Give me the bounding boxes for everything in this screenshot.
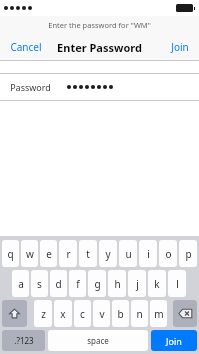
button[interactable]: j: [128, 270, 146, 297]
staticText: space: [87, 335, 109, 346]
button[interactable]: Join: [151, 330, 197, 351]
staticText: e: [46, 247, 52, 261]
staticText: h: [114, 277, 121, 291]
staticText: .?123: [14, 335, 34, 346]
button[interactable]: f: [69, 270, 86, 297]
button[interactable]: o: [159, 240, 177, 267]
button[interactable]: Shift: [2, 300, 27, 327]
button[interactable]: t: [79, 240, 97, 267]
staticText: Enter the password for "WM": [48, 20, 151, 30]
staticText: z: [41, 307, 46, 321]
staticText: l: [176, 277, 179, 291]
button[interactable]: k: [148, 270, 166, 297]
button[interactable]: z: [34, 300, 52, 327]
button[interactable]: g: [88, 270, 106, 297]
staticText: c: [80, 307, 85, 321]
staticText: u: [125, 247, 132, 261]
staticText: Cancel: [10, 40, 42, 54]
button[interactable]: .?123: [2, 330, 45, 351]
staticText: g: [94, 277, 101, 291]
button[interactable]: y: [99, 240, 117, 267]
staticText: j: [136, 277, 139, 291]
staticText: t: [86, 247, 90, 261]
button[interactable]: e: [40, 240, 57, 267]
staticText: k: [154, 277, 160, 291]
staticText: Password: [10, 81, 51, 93]
button[interactable]: x: [54, 300, 72, 327]
staticText: Join: [166, 335, 182, 347]
staticText: s: [37, 277, 42, 291]
button[interactable]: d: [50, 270, 67, 297]
button[interactable]: h: [108, 270, 126, 297]
button[interactable]: r: [59, 240, 77, 267]
staticText: Join: [171, 40, 189, 54]
staticText: a: [18, 277, 24, 291]
button[interactable]: Cancel: [0, 36, 52, 58]
button[interactable]: c: [74, 300, 91, 327]
staticText: m: [154, 307, 164, 321]
button[interactable]: space: [48, 330, 148, 351]
staticText: o: [165, 247, 172, 261]
staticText: d: [55, 277, 62, 291]
button[interactable]: Join: [161, 36, 199, 58]
button[interactable]: n: [131, 300, 148, 327]
button[interactable]: v: [93, 300, 110, 327]
staticText: f: [76, 277, 80, 291]
button[interactable]: a: [12, 270, 29, 297]
button[interactable]: Delete: [173, 300, 197, 327]
staticText: b: [117, 307, 124, 321]
staticText: n: [136, 307, 143, 321]
button[interactable]: Password: [0, 74, 199, 100]
button[interactable]: s: [31, 270, 48, 297]
button[interactable]: q: [2, 240, 19, 267]
staticText: w: [26, 247, 34, 261]
staticText: y: [105, 247, 111, 261]
button[interactable]: i: [139, 240, 157, 267]
button[interactable]: u: [119, 240, 137, 267]
button[interactable]: b: [112, 300, 129, 327]
staticText: Enter Password: [57, 40, 142, 55]
staticText: q: [7, 247, 14, 261]
button[interactable]: p: [179, 240, 197, 267]
staticText: r: [66, 247, 71, 261]
button[interactable]: l: [168, 270, 186, 297]
staticText: x: [60, 307, 66, 321]
staticText: i: [147, 247, 150, 261]
button[interactable]: w: [21, 240, 38, 267]
staticText: p: [185, 247, 192, 261]
staticText: v: [99, 307, 105, 321]
button[interactable]: m: [150, 300, 167, 327]
